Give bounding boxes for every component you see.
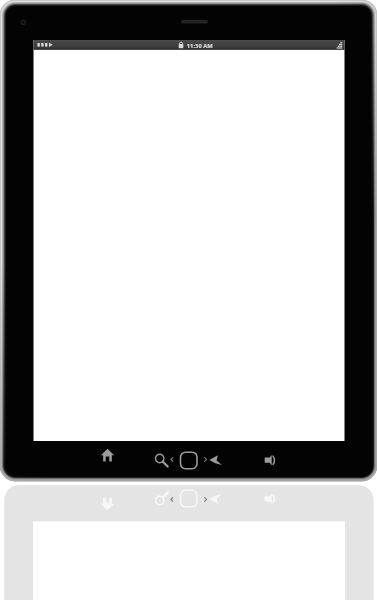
button[interactable]: Home [96, 448, 120, 473]
button[interactable]: Home button [178, 448, 200, 473]
button[interactable]: Search [148, 448, 172, 473]
button[interactable]: Volume [258, 448, 284, 473]
button[interactable]: Back [206, 448, 228, 473]
button[interactable]: Status bar [34, 40, 345, 50]
